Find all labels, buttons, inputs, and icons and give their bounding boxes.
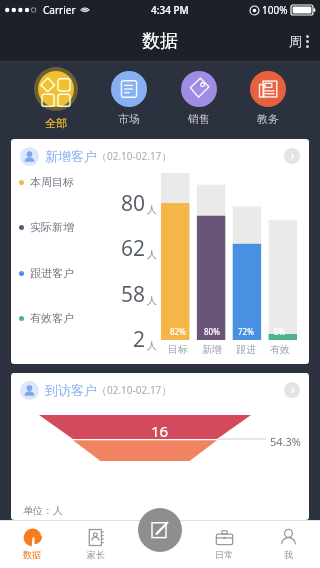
staticText: 本周目标 [30,175,74,189]
button[interactable]: 全部 [26,65,86,132]
button[interactable]: More details [284,148,300,164]
staticText: 有效 [263,343,297,356]
staticText: 80% [204,326,220,337]
staticText: 人 [147,203,157,216]
staticText: 54.3% [270,434,301,449]
staticText: 数据 [23,549,41,560]
button[interactable]: 家长 [64,520,128,568]
staticText: 跟进 [229,343,263,356]
staticText: 有效客户 [30,311,74,325]
staticText: 新增 [195,343,229,356]
staticText: 4:34 PM [151,3,189,17]
staticText: 100% [262,3,288,17]
staticText: 80 [121,189,146,218]
button[interactable]: 日常 [192,520,256,568]
button[interactable]: 销售 [173,69,225,128]
staticText: 销售 [188,112,210,126]
staticText: 我 [284,549,293,560]
staticText: 日常 [215,549,233,560]
staticText: 市场 [118,112,140,126]
button[interactable]: 到访客户 [11,373,309,520]
staticText: Carrier [43,3,76,17]
staticText: 单位：人 [23,504,63,517]
staticText: 人 [147,248,157,261]
staticText: 家长 [87,549,105,560]
button[interactable]: Period options [287,29,311,53]
staticText: 人 [147,339,157,352]
staticText: 16 [151,421,169,441]
button[interactable]: 数据 [0,520,64,568]
staticText: 2 [133,325,146,354]
button[interactable]: More details [284,382,300,398]
staticText: 跟进客户 [30,266,74,280]
button[interactable]: Compose [138,508,182,552]
staticText: 82% [170,326,186,337]
staticText: 到访客户 [45,382,97,398]
staticText: 人 [147,294,157,307]
staticText: 5% [274,326,286,337]
staticText: 全部 [45,116,67,130]
staticText: （02.10-02.17） [97,383,172,397]
staticText: 58 [121,280,146,309]
staticText: 周 [289,33,302,49]
staticText: 教务 [257,112,279,126]
staticText: 数据 [142,30,178,53]
button[interactable]: 我 [256,520,320,568]
button[interactable]: 教务 [242,69,294,128]
staticText: 72% [238,326,254,337]
staticText: 实际新增 [30,220,74,234]
button[interactable]: 市场 [103,69,155,128]
button[interactable]: 新增客户 [11,139,309,364]
staticText: 新增客户 [45,148,97,164]
staticText: 目标 [161,343,195,356]
staticText: 62 [121,234,146,263]
staticText: （02.10-02.17） [97,149,172,163]
